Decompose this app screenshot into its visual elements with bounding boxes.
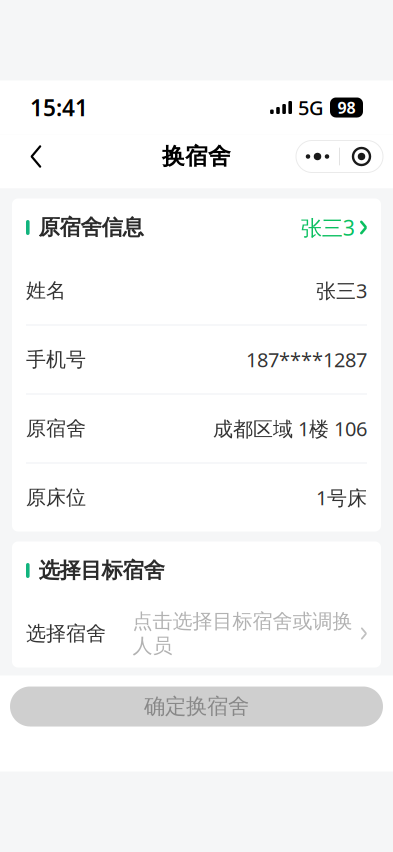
staticText: 确定换宿舍: [144, 693, 249, 720]
button[interactable]: 更多: [296, 140, 339, 172]
staticText: 手机号: [26, 347, 86, 372]
staticText: 原宿舍信息: [39, 214, 144, 241]
button[interactable]: 返回: [10, 134, 62, 178]
staticText: 98: [337, 97, 355, 118]
button[interactable]: 确定换宿舍: [10, 686, 383, 726]
staticText: 原宿舍: [26, 416, 86, 441]
button[interactable]: 关闭: [340, 140, 383, 172]
staticText: 姓名: [26, 278, 66, 303]
staticText: 点击选择目标宿舍或调换人员: [133, 609, 353, 658]
staticText: 换宿舍: [162, 143, 231, 170]
staticText: 187****1287: [246, 346, 367, 373]
button[interactable]: 选择宿舍: [12, 599, 381, 667]
staticText: 张三3: [316, 277, 367, 304]
staticText: 15:41: [30, 92, 88, 122]
staticText: 选择宿舍: [26, 621, 106, 646]
button[interactable]: 张三3: [301, 209, 367, 246]
staticText: 原床位: [26, 485, 86, 510]
staticText: 1号床: [316, 484, 367, 511]
staticText: 成都区域 1楼 106: [213, 415, 367, 442]
staticText: 张三3: [301, 213, 355, 242]
staticText: 5G: [298, 94, 324, 121]
staticText: 选择目标宿舍: [39, 557, 165, 584]
